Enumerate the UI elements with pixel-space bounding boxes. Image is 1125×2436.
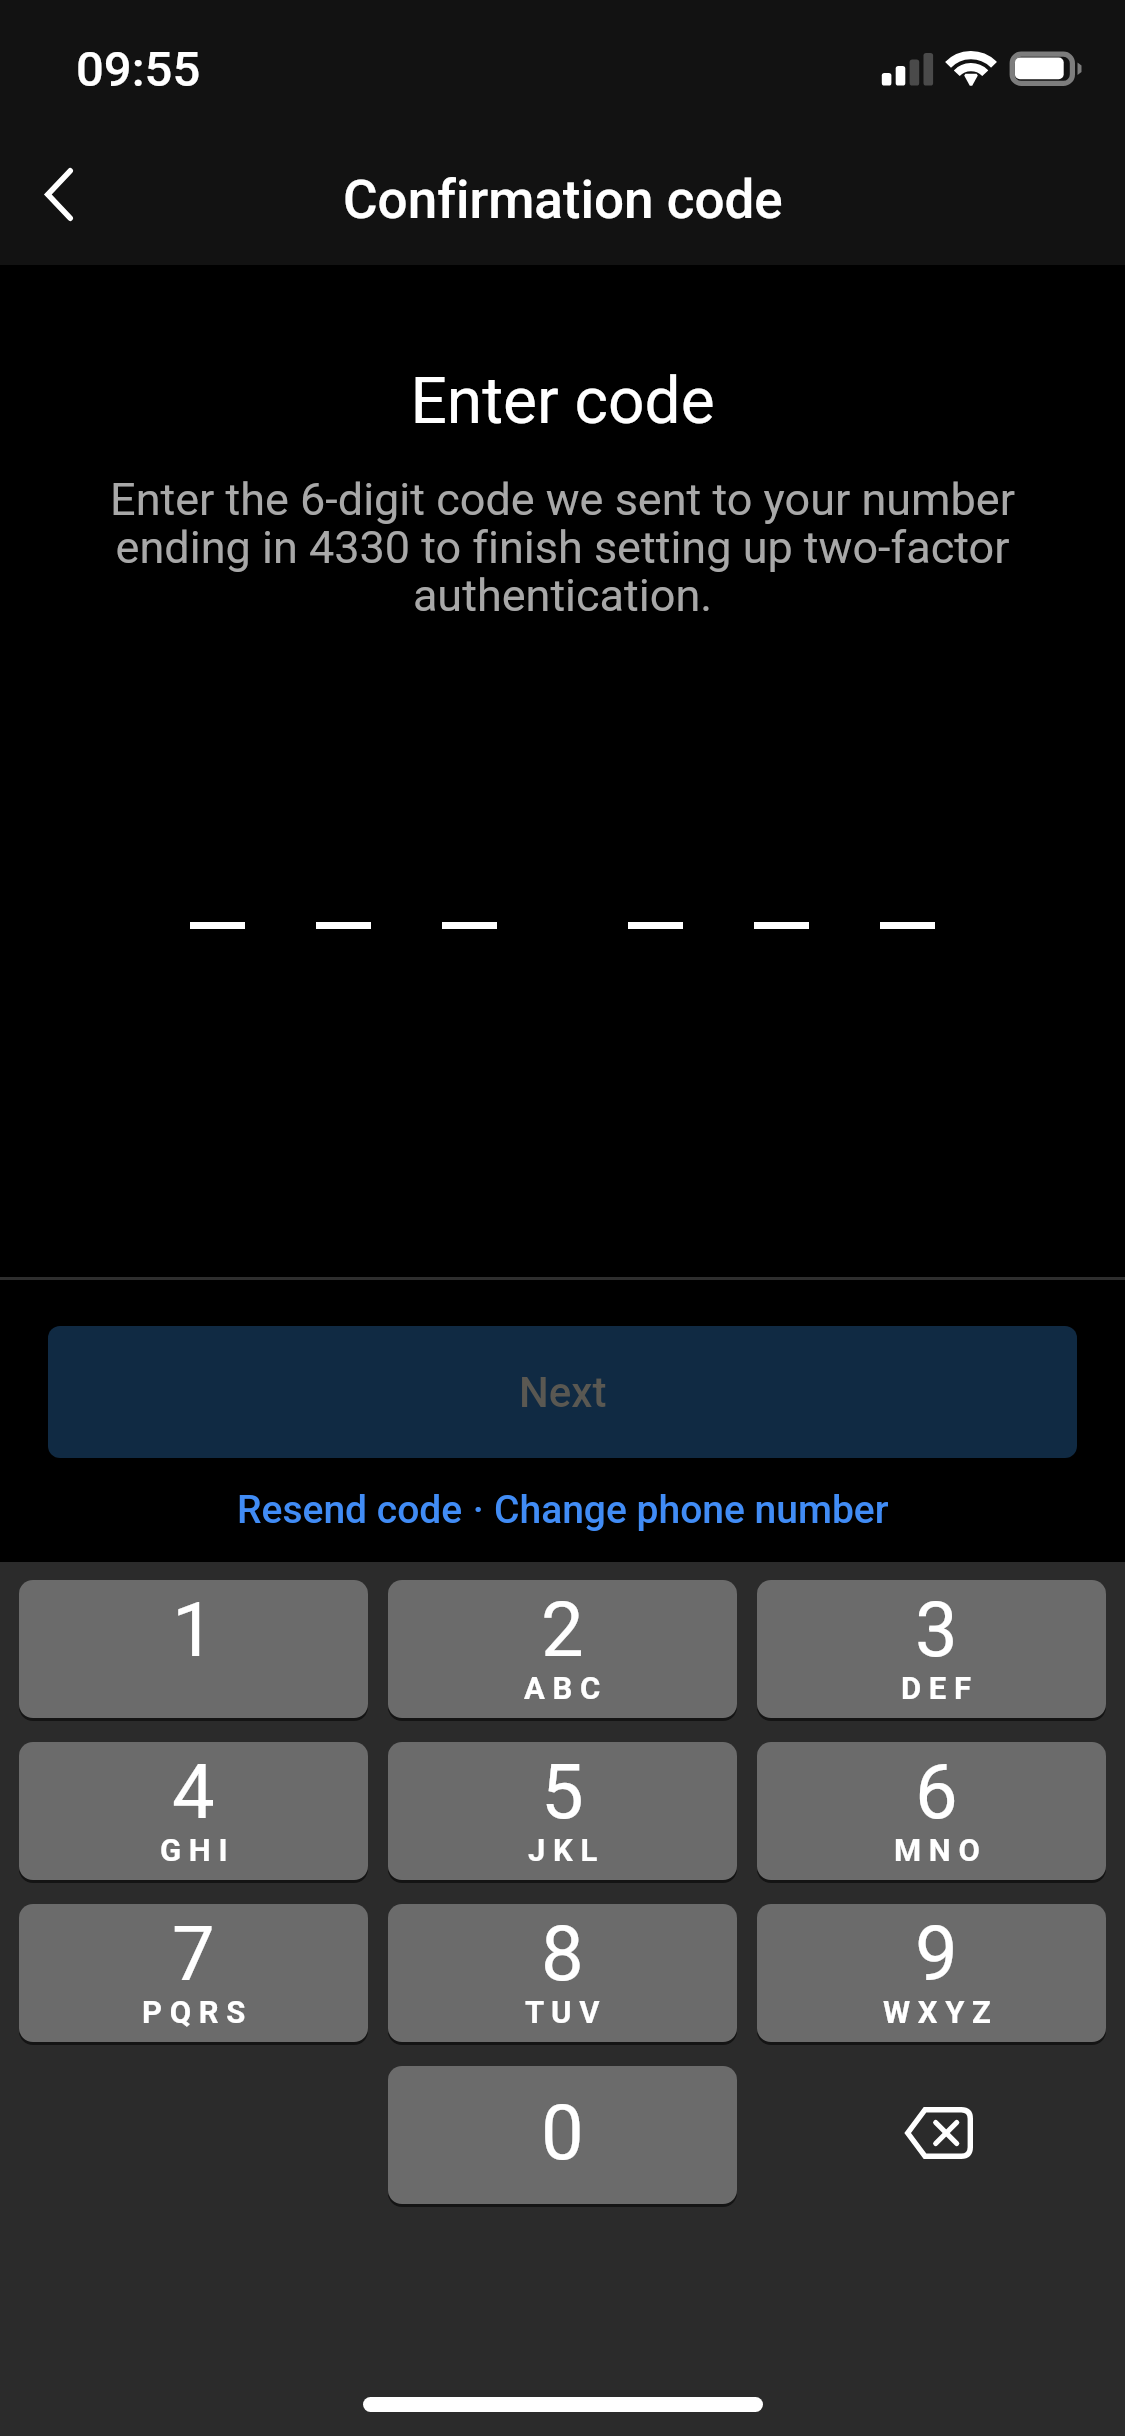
- staticText: T U V: [525, 1994, 600, 2030]
- staticText: 9: [915, 1909, 958, 1998]
- staticText: M N O: [894, 1832, 980, 1868]
- staticText: J K L: [528, 1832, 598, 1868]
- staticText: Enter the 6-digit code we sent to your n…: [92, 473, 1033, 622]
- staticText: Enter code: [0, 364, 1125, 439]
- staticText: D E F: [901, 1670, 972, 1706]
- staticText: W X Y Z: [883, 1994, 991, 2030]
- staticText: 4: [172, 1747, 215, 1836]
- staticText: 5: [541, 1747, 584, 1836]
- staticText: G H I: [160, 1832, 228, 1868]
- button[interactable]: 2: [388, 1580, 737, 1718]
- staticText: P Q R S: [142, 1994, 246, 2030]
- button[interactable]: 3: [757, 1580, 1106, 1718]
- button[interactable]: 6: [757, 1742, 1106, 1880]
- staticText: 8: [541, 1909, 584, 1998]
- button[interactable]: 7: [19, 1904, 368, 2042]
- staticText: ·: [463, 1487, 494, 1533]
- staticText: 1: [172, 1585, 215, 1674]
- staticText: 2: [541, 1585, 584, 1674]
- staticText: Next: [519, 1368, 607, 1417]
- button[interactable]: 9: [757, 1904, 1106, 2042]
- button[interactable]: Backspace: [757, 2066, 1106, 2204]
- button[interactable]: Back: [4, 144, 114, 254]
- button[interactable]: 5: [388, 1742, 737, 1880]
- button[interactable]: 0: [388, 2066, 737, 2204]
- button[interactable]: 8: [388, 1904, 737, 2042]
- staticText: Confirmation code: [343, 169, 783, 231]
- staticText: 6: [915, 1747, 958, 1836]
- button[interactable]: Next: [48, 1326, 1077, 1458]
- button[interactable]: 4: [19, 1742, 368, 1880]
- staticText: 09:55: [76, 41, 201, 98]
- staticText: A B C: [524, 1670, 601, 1706]
- button[interactable]: 1: [19, 1580, 368, 1718]
- staticText: Change phone number: [494, 1487, 889, 1533]
- staticText: 7: [172, 1909, 215, 1998]
- button[interactable]: Change phone number: [494, 1487, 889, 1533]
- staticText: 3: [915, 1585, 958, 1674]
- staticText: Resend code: [237, 1487, 463, 1533]
- button[interactable]: Resend code: [237, 1487, 463, 1533]
- staticText: 0: [541, 2088, 584, 2177]
